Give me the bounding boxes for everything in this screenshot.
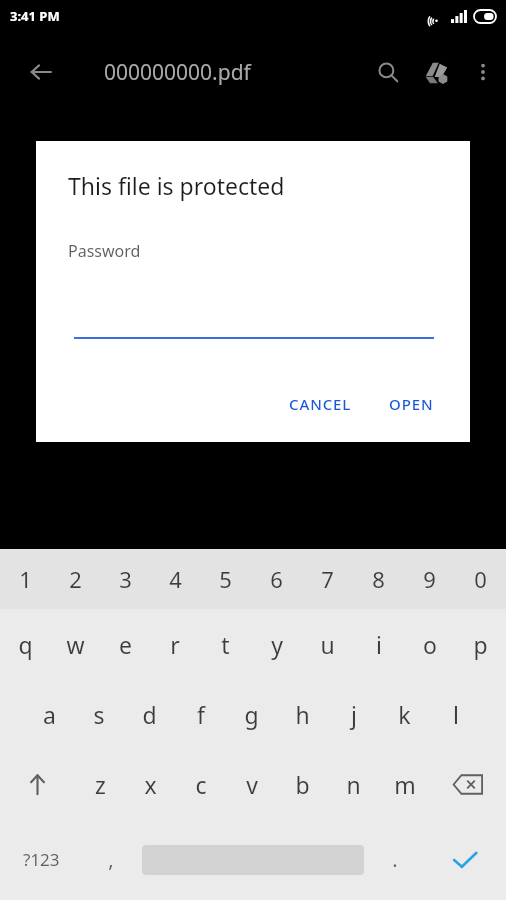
button[interactable]: .	[366, 819, 423, 900]
staticText: CANCEL	[289, 394, 352, 414]
staticText: 5	[219, 564, 232, 594]
button[interactable]: d	[124, 679, 175, 749]
button[interactable]: Done	[423, 819, 506, 900]
staticText: u	[320, 629, 335, 660]
button[interactable]: 5	[200, 549, 251, 609]
staticText: 8	[372, 564, 385, 594]
button[interactable]: w	[50, 609, 100, 679]
button[interactable]: g	[226, 679, 277, 749]
staticText: l	[453, 699, 459, 730]
staticText: OPEN	[389, 394, 434, 414]
staticText: a	[43, 699, 56, 730]
button[interactable]: Shift	[0, 749, 75, 819]
staticText: k	[398, 699, 411, 730]
button[interactable]: 3	[100, 549, 150, 609]
button[interactable]: k	[379, 679, 430, 749]
staticText: m	[394, 769, 416, 800]
staticText: j	[351, 699, 357, 730]
staticText: ?123	[23, 848, 60, 871]
button[interactable]: h	[277, 679, 328, 749]
staticText: 0	[474, 564, 487, 594]
staticText: h	[295, 699, 310, 730]
staticText: y	[271, 629, 283, 660]
button[interactable]: b	[277, 749, 328, 819]
button[interactable]: l	[430, 679, 481, 749]
button[interactable]: z	[75, 749, 125, 819]
staticText: b	[295, 769, 310, 800]
staticText: 7	[321, 564, 334, 594]
button[interactable]: ,	[82, 819, 139, 900]
staticText: q	[18, 629, 33, 660]
staticText: o	[423, 629, 437, 660]
staticText: f	[197, 699, 205, 730]
button[interactable]: 8	[353, 549, 404, 609]
button[interactable]: 7	[302, 549, 353, 609]
button[interactable]: q	[0, 609, 50, 679]
button[interactable]: Search	[364, 48, 412, 96]
button[interactable]: j	[328, 679, 379, 749]
button[interactable]: 0	[455, 549, 506, 609]
button[interactable]: 1	[0, 549, 50, 609]
staticText: s	[93, 699, 105, 730]
button[interactable]: 6	[251, 549, 302, 609]
staticText: x	[144, 769, 157, 800]
button[interactable]: i	[353, 609, 404, 679]
button[interactable]: e	[100, 609, 150, 679]
staticText: 3:41 PM	[10, 7, 60, 25]
staticText: Password	[68, 240, 141, 262]
button[interactable]: y	[251, 609, 302, 679]
button[interactable]: c	[175, 749, 226, 819]
button[interactable]: p	[455, 609, 506, 679]
staticText: .	[392, 846, 398, 873]
staticText: p	[473, 629, 488, 660]
button[interactable]: 2	[50, 549, 100, 609]
button[interactable]: More options	[460, 49, 506, 95]
staticText: 2	[69, 564, 82, 594]
staticText: ,	[108, 846, 114, 873]
button[interactable]: Backspace	[430, 749, 506, 819]
button[interactable]: f	[175, 679, 226, 749]
button[interactable]: 9	[404, 549, 455, 609]
button[interactable]: a	[24, 679, 74, 749]
staticText: This file is protected	[68, 170, 285, 201]
button[interactable]: x	[125, 749, 175, 819]
staticText: 1	[19, 564, 32, 594]
button[interactable]: CANCEL	[279, 386, 362, 422]
staticText: 000000000.pdf	[104, 58, 251, 87]
button[interactable]: n	[328, 749, 379, 819]
button[interactable]: m	[379, 749, 430, 819]
button[interactable]: t	[200, 609, 251, 679]
button[interactable]	[74, 291, 434, 339]
staticText: r	[170, 629, 180, 660]
staticText: 4	[169, 564, 182, 594]
button[interactable]: s	[74, 679, 124, 749]
staticText: 9	[423, 564, 436, 594]
staticText: i	[376, 629, 382, 660]
button[interactable]: 4	[150, 549, 200, 609]
staticText: n	[346, 769, 361, 800]
button[interactable]: v	[226, 749, 277, 819]
staticText: v	[246, 769, 258, 800]
staticText: z	[95, 769, 106, 800]
staticText: e	[119, 629, 132, 660]
staticText: c	[195, 769, 207, 800]
button[interactable]: r	[150, 609, 200, 679]
staticText: d	[142, 699, 157, 730]
staticText: w	[66, 629, 85, 660]
staticText: 3	[119, 564, 132, 594]
button[interactable]: o	[404, 609, 455, 679]
staticText: 6	[270, 564, 283, 594]
button[interactable]: u	[302, 609, 353, 679]
staticText: g	[244, 699, 259, 730]
button[interactable]: Back	[17, 48, 65, 96]
button[interactable]: Space	[139, 819, 366, 900]
button[interactable]: Save to Drive	[412, 48, 460, 96]
button[interactable]: ?123	[0, 819, 82, 900]
staticText: t	[221, 629, 230, 660]
button[interactable]: OPEN	[379, 386, 444, 422]
